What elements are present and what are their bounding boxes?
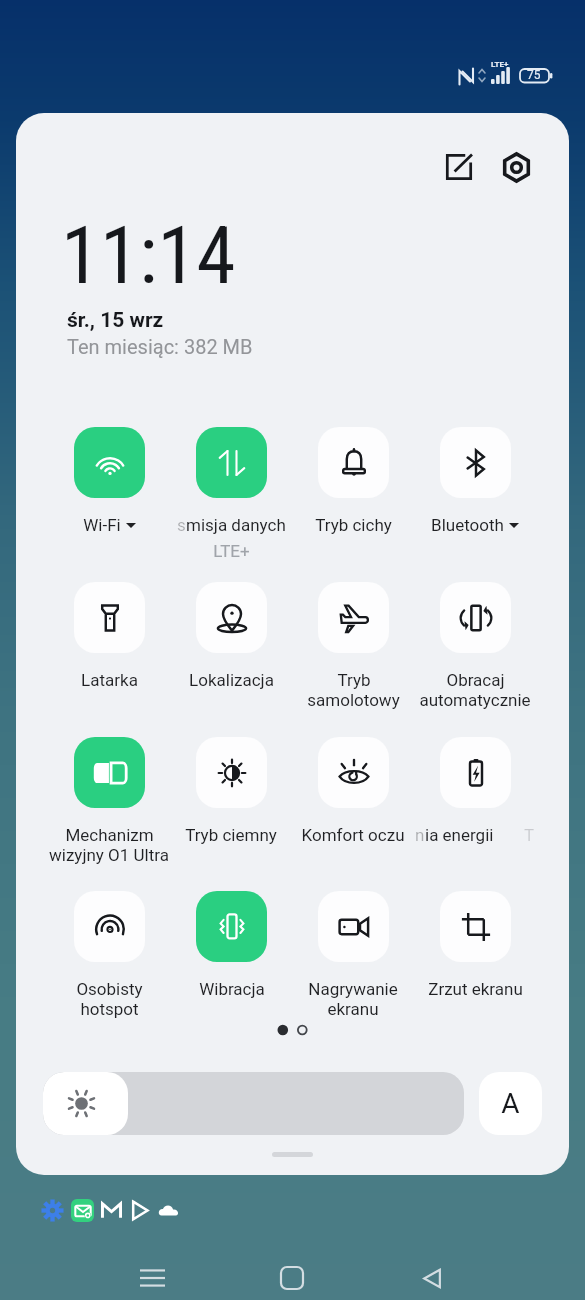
staticText: LTE+ — [213, 541, 250, 561]
button[interactable]: Brightness — [43, 1072, 464, 1135]
staticText: Osobisty — [76, 979, 143, 999]
staticText: Ten miesiąc: 382 MB — [67, 335, 253, 358]
button[interactable]: Zrzut ekranu — [414, 888, 536, 1038]
staticText: ekranu — [327, 999, 379, 1019]
button[interactable]: Back — [405, 1251, 459, 1300]
staticText: Mechanizm — [65, 825, 154, 845]
staticText: s — [177, 515, 186, 535]
staticText: A — [501, 1087, 520, 1120]
button[interactable]: Home — [265, 1251, 319, 1300]
staticText: LTE+ — [491, 60, 509, 69]
staticText: misja danych — [186, 515, 286, 535]
staticText: Tryb — [337, 670, 371, 690]
staticText: ia energii — [425, 825, 494, 845]
staticText: Wi-Fi — [83, 515, 121, 535]
button[interactable]: Recent apps — [125, 1251, 179, 1300]
button[interactable]: Edit tiles — [432, 140, 486, 194]
button[interactable]: A — [479, 1072, 542, 1135]
button[interactable] — [414, 734, 536, 884]
button[interactable]: Mechanizm — [48, 734, 170, 884]
staticText: Nagrywanie — [308, 979, 398, 999]
staticText: Wibracja — [199, 979, 265, 999]
staticText: 75 — [527, 68, 541, 82]
staticText: T — [524, 825, 535, 845]
button[interactable]: Tryb — [292, 579, 414, 729]
staticText: 11:14 — [61, 210, 236, 303]
button[interactable]: Wibracja — [170, 888, 292, 1038]
button[interactable]: LTE+ — [170, 424, 292, 574]
staticText — [229, 515, 234, 535]
staticText: wizyjny O1 Ultra — [49, 845, 169, 865]
staticText: Lokalizacja — [189, 670, 274, 690]
button[interactable]: Nagrywanie — [292, 888, 414, 1038]
staticText: n — [415, 825, 425, 845]
button[interactable]: Bluetooth — [414, 424, 536, 574]
staticText — [473, 825, 478, 845]
staticText: Bluetooth — [431, 515, 504, 535]
staticText: śr., 15 wrz — [67, 308, 164, 333]
button[interactable]: Settings — [489, 140, 543, 194]
staticText: Obracaj — [446, 670, 505, 690]
button[interactable]: Osobisty — [48, 888, 170, 1038]
staticText: Tryb cichy — [315, 515, 392, 535]
staticText: Latarka — [81, 670, 138, 690]
staticText: samolotowy — [307, 690, 400, 710]
staticText: Komfort oczu — [301, 825, 405, 845]
button[interactable]: Komfort oczu — [292, 734, 414, 884]
staticText: Zrzut ekranu — [428, 979, 523, 999]
staticText: automatycznie — [419, 690, 531, 710]
staticText: hotspot — [80, 999, 139, 1019]
button[interactable]: Latarka — [48, 579, 170, 729]
staticText: Tryb ciemny — [185, 825, 277, 845]
button[interactable]: Tryb cichy — [292, 424, 414, 574]
button[interactable]: Obracaj — [414, 579, 536, 729]
button[interactable]: Lokalizacja — [170, 579, 292, 729]
button[interactable]: Tryb ciemny — [170, 734, 292, 884]
button[interactable]: Wi-Fi — [48, 424, 170, 574]
